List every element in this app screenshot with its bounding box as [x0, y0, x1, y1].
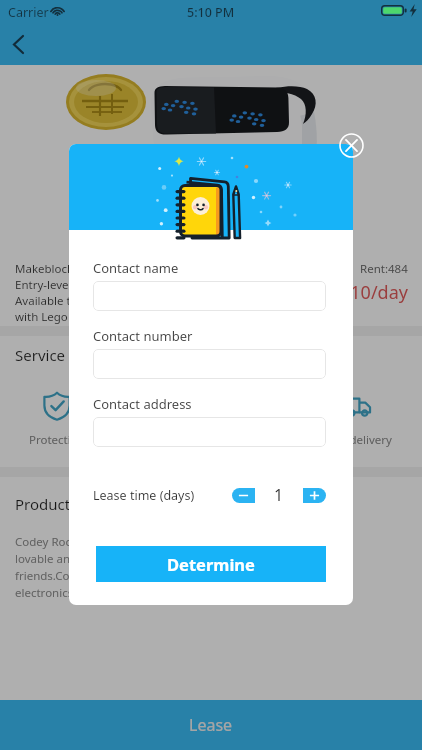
staticText: Entry-level programming robot.	[15, 277, 186, 293]
staticText: Service	[15, 345, 66, 365]
staticText: Determine	[167, 553, 255, 575]
staticText: 5:10 PM	[187, 4, 235, 21]
staticText: Makeblock Codey Rocky	[15, 261, 145, 277]
button[interactable]	[93, 349, 326, 379]
button[interactable]: Close	[339, 133, 364, 158]
button[interactable]: Protection	[25, 391, 89, 448]
staticText: Lease time (days)	[93, 487, 195, 504]
staticText: Warranty	[180, 432, 230, 448]
button[interactable]	[93, 417, 326, 447]
staticText: ¥10/day	[340, 280, 408, 305]
staticText: Available to play games.	[15, 293, 146, 309]
button[interactable]: Lease	[0, 700, 422, 750]
staticText: with Lego	[15, 309, 68, 325]
staticText: Codey Rocky is an entry-level programmin…	[15, 534, 310, 601]
staticText: Rent:484	[360, 261, 408, 277]
staticText: Product details	[15, 494, 121, 514]
button[interactable]: Warranty	[176, 391, 234, 448]
button[interactable]: Back	[0, 26, 36, 62]
button[interactable]: Increase lease time	[303, 488, 326, 503]
staticText: 1	[274, 484, 284, 506]
button[interactable]	[93, 281, 326, 311]
button[interactable]: Determine	[96, 546, 326, 582]
staticText: Contact number	[93, 327, 193, 345]
staticText: Carrier	[8, 4, 49, 21]
button[interactable]: Decrease lease time	[232, 488, 255, 503]
staticText: Free delivery	[323, 432, 392, 448]
button[interactable]: Free delivery	[319, 391, 396, 448]
staticText: Contact name	[93, 259, 179, 277]
staticText: Contact address	[93, 395, 192, 413]
staticText: Protection	[29, 432, 85, 448]
staticText: Lease	[189, 714, 233, 736]
